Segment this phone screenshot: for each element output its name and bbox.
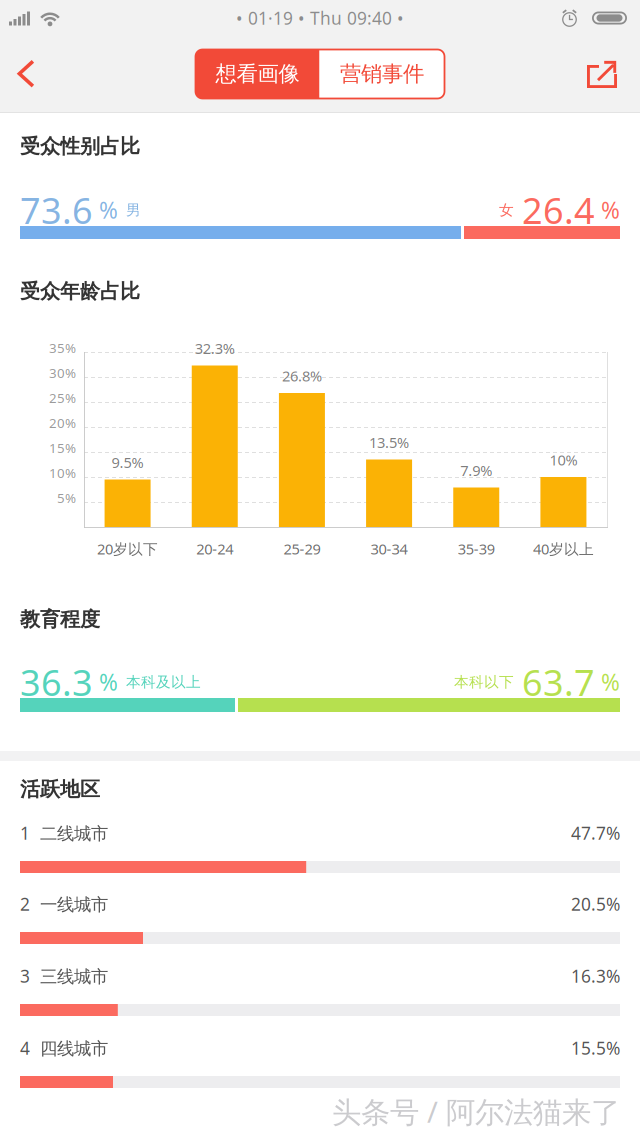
staticText: 20岁以下 [97,539,158,558]
staticText: 73.6 [20,186,93,234]
staticText: 36.3 [20,658,93,706]
staticText: % [93,195,118,225]
button[interactable]: 营销事件 [319,49,444,98]
staticText: 4 四线城市 [20,1036,108,1059]
staticText: 男 [118,201,141,219]
staticText: 本科及以上 [118,673,201,691]
button[interactable]: 4 四线城市 [20,1037,620,1088]
staticText: 40岁以上 [533,539,594,558]
staticText: 本科以下 [454,673,522,691]
staticText: 20-24 [196,539,233,558]
staticText: 1 二线城市 [20,821,108,844]
staticText: 25% [49,389,76,407]
staticText: % [93,667,118,697]
staticText: % [595,195,620,225]
staticText: 20.5% [571,892,620,915]
staticText: 女 [499,201,522,219]
staticText: 16.3% [571,964,620,987]
staticText: 5% [57,489,76,507]
staticText: 受众性别占比 [20,134,140,159]
staticText: 2 一线城市 [20,892,108,915]
staticText: 受众年龄占比 [20,279,140,304]
staticText: 26.8% [282,366,322,385]
button[interactable]: 2 一线城市 [20,893,620,944]
staticText: 30% [49,364,76,382]
staticText: 10% [549,450,577,469]
staticText: 26.4 [522,186,595,234]
staticText: 63.7 [522,658,595,706]
button[interactable]: Back [0,36,50,112]
staticText: 25-29 [283,539,320,558]
staticText: 13.5% [369,432,409,452]
staticText: 9.5% [112,452,144,472]
staticText: 15% [49,439,76,457]
staticText: 35-39 [458,539,495,558]
staticText: % [595,667,620,697]
staticText: 47.7% [571,821,620,844]
staticText: • 01·19 • Thu 09:40 • [236,6,404,29]
staticText: 3 三线城市 [20,964,108,987]
button[interactable]: Share [564,36,640,112]
button[interactable]: 1 二线城市 [20,822,620,873]
button[interactable]: 想看画像 [195,49,319,98]
staticText: 活跃地区 [20,777,100,802]
staticText: 30-34 [371,539,408,558]
staticText: 20% [49,414,76,432]
staticText: 想看画像 [215,61,299,87]
staticText: 10% [49,464,76,482]
staticText: 35% [49,339,76,357]
staticText: 32.3% [195,338,235,358]
staticText: 15.5% [571,1036,620,1059]
staticText: 教育程度 [20,607,100,632]
staticText: 头条号 / 阿尔法猫来了 [332,1092,620,1131]
staticText: 7.9% [460,460,492,480]
button[interactable]: 3 三线城市 [20,965,620,1016]
staticText: 营销事件 [340,61,424,87]
